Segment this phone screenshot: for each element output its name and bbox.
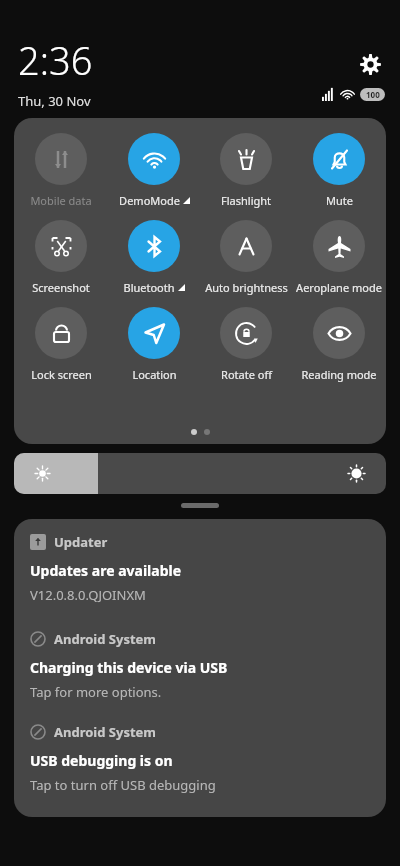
staticText: Mute [326,193,353,208]
staticText: Tap to turn off USB debugging [30,776,216,794]
staticText: DemoMode [119,193,180,208]
staticText: Bluetooth [123,280,175,295]
staticText: Android System [54,630,157,648]
button[interactable]: Android System [30,630,370,701]
button[interactable]: Auto brightness [201,217,291,298]
button[interactable]: Lock screen [16,304,106,385]
staticText: 2:36 [18,34,93,86]
staticText: Aeroplane mode [296,280,382,295]
staticText: Lock screen [31,367,92,382]
staticText: Auto brightness [205,280,288,295]
button[interactable]: Flashlight [201,130,291,211]
button[interactable]: Mute [294,130,384,211]
staticText: Tap for more options. [30,683,162,701]
staticText: Charging this device via USB [30,658,228,677]
button[interactable]: Mobile data [16,130,106,211]
staticText: Mobile data [30,193,92,208]
staticText: Screenshot [32,280,90,295]
button[interactable]: Reading mode [294,304,384,385]
staticText: Updates are available [30,561,182,580]
button[interactable]: DemoMode [109,130,199,211]
staticText: Android System [54,723,157,741]
button[interactable]: Aeroplane mode [294,217,384,298]
button[interactable]: Settings [354,48,386,80]
button[interactable]: Location [109,304,199,385]
staticText: 100 [366,89,380,100]
staticText: Thu, 30 Nov [18,92,91,110]
staticText: Reading mode [301,367,377,382]
staticText: Rotate off [221,367,272,382]
button[interactable]: Android System [30,723,370,794]
button[interactable]: Screenshot [16,217,106,298]
button[interactable]: Bluetooth [109,217,199,298]
button[interactable]: Rotate off [201,304,291,385]
button[interactable]: Brightness [14,453,386,494]
staticText: Updater [54,533,108,551]
staticText: Flashlight [221,193,271,208]
staticText: USB debugging is on [30,751,173,770]
button[interactable]: Updater [30,533,370,604]
staticText: V12.0.8.0.QJOINXM [30,586,146,604]
staticText: Location [132,367,177,382]
